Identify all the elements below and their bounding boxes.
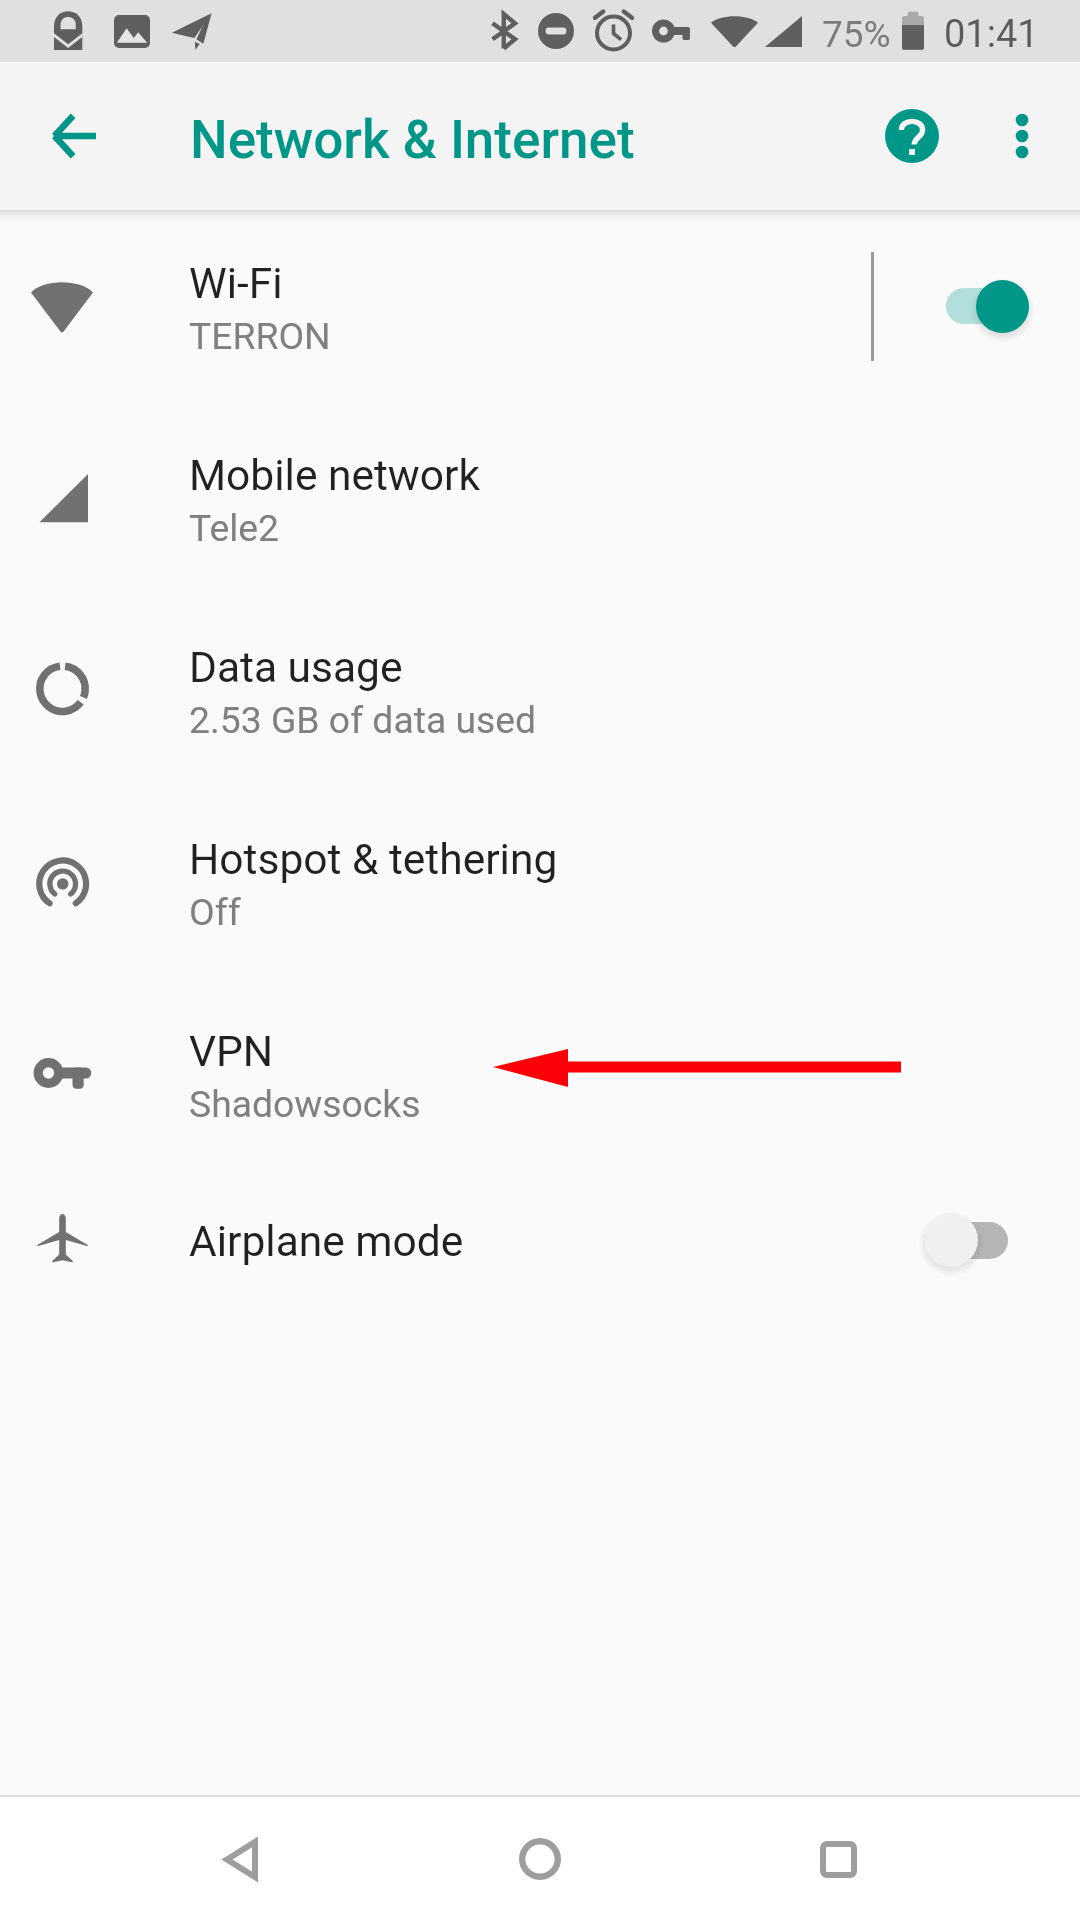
staticText: VPN: [189, 1027, 274, 1077]
button[interactable]: Home: [480, 1799, 600, 1919]
staticText: Data usage: [189, 643, 403, 693]
button[interactable]: Help: [864, 88, 960, 184]
staticText: 75%: [822, 13, 891, 56]
button[interactable]: Data usage: [0, 594, 1080, 786]
staticText: Mobile network: [189, 451, 480, 501]
button[interactable]: Wi-Fi toggle: [932, 258, 1080, 354]
staticText: Hotspot & tethering: [189, 835, 558, 885]
button[interactable]: Hotspot & tethering: [0, 786, 1080, 978]
button[interactable]: Airplane mode toggle: [932, 1192, 1080, 1288]
staticText: 2.53 GB of data used: [189, 698, 537, 742]
button[interactable]: Airplane mode: [0, 1170, 1080, 1310]
button[interactable]: VPN: [0, 978, 1080, 1170]
staticText: Wi-Fi: [189, 259, 283, 309]
staticText: Airplane mode: [189, 1217, 464, 1267]
button[interactable]: More options: [974, 88, 1070, 184]
staticText: Off: [189, 890, 241, 934]
staticText: Shadowsocks: [189, 1082, 421, 1126]
button[interactable]: Wi-Fi: [0, 210, 1080, 402]
staticText: Network & Internet: [190, 109, 635, 171]
staticText: Tele2: [189, 506, 280, 550]
button[interactable]: Mobile network: [0, 402, 1080, 594]
staticText: 01:41: [944, 12, 1039, 57]
button[interactable]: Back: [26, 88, 122, 184]
button[interactable]: Recents: [778, 1799, 898, 1919]
button[interactable]: Back: [181, 1799, 301, 1919]
staticText: TERRON: [189, 314, 331, 358]
